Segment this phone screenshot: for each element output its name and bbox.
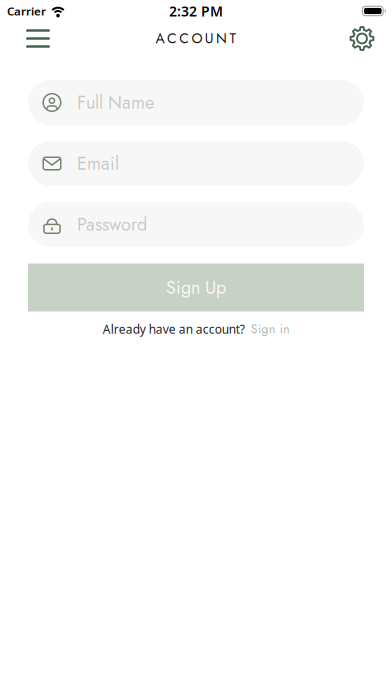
staticText: Sign Up [166, 274, 226, 300]
button[interactable]: Password [28, 202, 364, 247]
staticText: Carrier [7, 3, 46, 19]
button[interactable]: Settings [349, 25, 375, 51]
staticText: Full Name [77, 89, 154, 115]
staticText: Password [77, 211, 147, 237]
staticText: Already have an account? [103, 321, 245, 337]
staticText: Email [77, 150, 119, 176]
button[interactable]: Full Name [28, 80, 364, 125]
button[interactable]: Menu [26, 29, 50, 48]
button[interactable]: Sign in [251, 320, 289, 338]
button[interactable]: Sign Up [28, 263, 364, 311]
staticText: ACCOUNT [156, 28, 236, 49]
staticText: 2:32 PM [169, 2, 223, 20]
button[interactable]: Email [28, 141, 364, 186]
staticText: Sign in [251, 320, 289, 338]
